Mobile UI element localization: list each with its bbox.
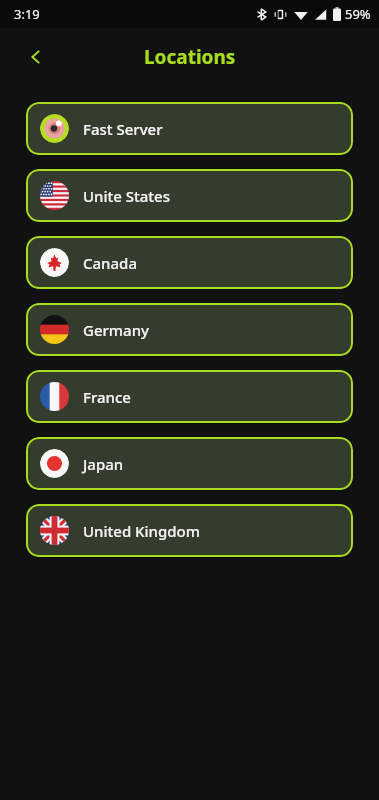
staticText: 59%: [345, 5, 371, 23]
staticText: Unite States: [83, 186, 171, 206]
staticText: Canada: [83, 253, 137, 273]
button[interactable]: France: [26, 370, 353, 423]
button[interactable]: Back: [16, 37, 56, 77]
staticText: Germany: [83, 320, 149, 340]
button[interactable]: Japan: [26, 437, 353, 490]
staticText: United Kingdom: [83, 521, 200, 541]
button[interactable]: Fast Server: [26, 102, 353, 155]
button[interactable]: Unite States: [26, 169, 353, 222]
staticText: Locations: [144, 44, 236, 70]
staticText: Fast Server: [83, 119, 163, 139]
staticText: 3:19: [14, 5, 40, 23]
staticText: France: [83, 387, 131, 407]
button[interactable]: United Kingdom: [26, 504, 353, 557]
button[interactable]: Canada: [26, 236, 353, 289]
staticText: Japan: [83, 454, 124, 474]
button[interactable]: Germany: [26, 303, 353, 356]
